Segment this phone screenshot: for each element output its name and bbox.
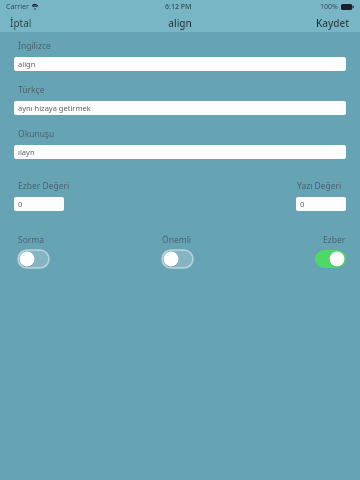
staticText: İngilizce xyxy=(18,40,51,52)
staticText: Kaydet xyxy=(316,16,350,30)
button[interactable]: ılayn xyxy=(14,145,346,159)
staticText: align xyxy=(18,59,36,69)
staticText: ılayn xyxy=(18,147,35,157)
staticText: 100% xyxy=(320,2,338,12)
staticText: 0 xyxy=(18,199,23,209)
button[interactable]: Sorma xyxy=(18,234,49,268)
staticText: align xyxy=(168,16,192,30)
staticText: Ezber xyxy=(323,234,346,246)
button[interactable]: İptal xyxy=(0,14,42,32)
staticText: aynı hizaya getirmek xyxy=(18,103,91,113)
button[interactable]: 0 xyxy=(14,197,64,211)
staticText: Okunuşu xyxy=(18,128,55,140)
button[interactable]: Kaydet xyxy=(306,14,360,32)
staticText: 0 xyxy=(300,199,305,209)
button[interactable]: align xyxy=(14,57,346,71)
button[interactable]: aynı hizaya getirmek xyxy=(14,101,346,115)
staticText: Önemli xyxy=(162,234,192,246)
staticText: 6:12 PM xyxy=(165,2,192,12)
staticText: Türkçe xyxy=(18,84,45,96)
button[interactable]: Önemli xyxy=(162,234,193,268)
staticText: Ezber Değeri xyxy=(18,180,70,192)
button[interactable]: Ezber xyxy=(315,234,346,268)
staticText: Carrier xyxy=(6,2,29,12)
staticText: Yazı Değeri xyxy=(297,180,342,192)
staticText: İptal xyxy=(10,16,32,30)
staticText: Sorma xyxy=(18,234,45,246)
button[interactable]: 0 xyxy=(296,197,346,211)
